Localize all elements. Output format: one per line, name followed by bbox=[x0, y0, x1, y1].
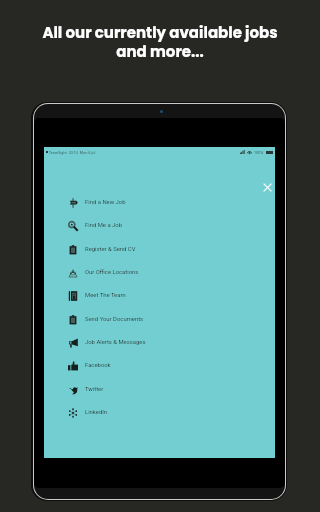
staticText: All our currently available jobs and mor… bbox=[42, 22, 278, 62]
button[interactable]: Facebook bbox=[44, 354, 275, 377]
button[interactable]: Register & Send CV bbox=[44, 238, 275, 261]
button[interactable]: Our Office Locations bbox=[44, 261, 275, 284]
button[interactable]: Meet The Team bbox=[44, 284, 275, 307]
staticText: Send Your Documents bbox=[85, 316, 144, 323]
staticText: Meet The Team bbox=[85, 292, 126, 299]
staticText: Find a New Job bbox=[85, 199, 126, 206]
button[interactable]: Find a New Job bbox=[44, 191, 275, 214]
staticText: TeamSight 23:14 Mon 6 Jul bbox=[49, 150, 96, 155]
staticText: Twitter bbox=[85, 386, 104, 393]
staticText: Our Office Locations bbox=[85, 269, 139, 276]
button[interactable]: LinkedIn bbox=[44, 401, 275, 424]
staticText: LinkedIn bbox=[85, 409, 108, 416]
button[interactable]: Close menu bbox=[258, 178, 277, 197]
button[interactable]: Twitter bbox=[44, 378, 275, 401]
button[interactable]: Send Your Documents bbox=[44, 308, 275, 331]
staticText: Job Alerts & Messages bbox=[85, 339, 146, 346]
button[interactable]: Find Me a Job bbox=[44, 214, 275, 237]
staticText: 100% bbox=[254, 150, 264, 155]
staticText: Register & Send CV bbox=[85, 246, 136, 253]
button[interactable]: Job Alerts & Messages bbox=[44, 331, 275, 354]
staticText: Facebook bbox=[85, 362, 111, 369]
staticText: Find Me a Job bbox=[85, 222, 123, 229]
